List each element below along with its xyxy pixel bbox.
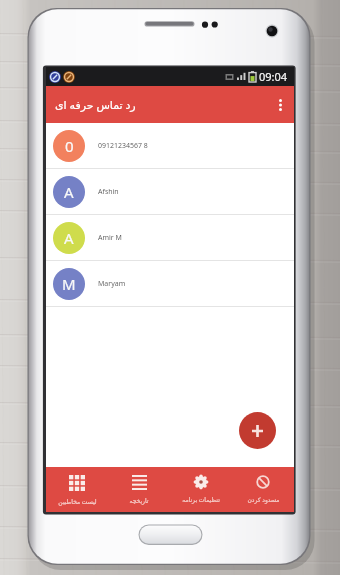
button[interactable]: A bbox=[46, 215, 294, 261]
button[interactable]: 0 bbox=[46, 123, 294, 169]
staticText: تنظیمات برنامه bbox=[182, 496, 220, 504]
staticText: 09:04 bbox=[259, 69, 288, 84]
staticText: لیست مخاطبین bbox=[58, 498, 97, 506]
button[interactable]: A bbox=[46, 169, 294, 215]
button[interactable]: M bbox=[46, 261, 294, 307]
staticText: M bbox=[62, 274, 76, 294]
button[interactable]: لیست مخاطبین bbox=[46, 467, 108, 512]
staticText: A bbox=[64, 228, 74, 248]
button[interactable]: More options bbox=[266, 86, 294, 123]
staticText: Afshin bbox=[98, 187, 119, 197]
staticText: رد تماس حرفه ای bbox=[55, 97, 136, 112]
staticText: تاریخچه bbox=[129, 497, 149, 504]
button[interactable]: مسدود کردن bbox=[232, 467, 294, 512]
button[interactable]: Add contact bbox=[239, 412, 276, 449]
staticText: Amir M bbox=[98, 233, 122, 243]
staticText: مسدود کردن bbox=[247, 496, 280, 504]
staticText: A bbox=[64, 182, 74, 202]
button[interactable]: تنظیمات برنامه bbox=[170, 467, 232, 512]
button[interactable]: تاریخچه bbox=[108, 467, 170, 512]
staticText: 09121234567 8 bbox=[98, 141, 148, 151]
staticText: Maryam bbox=[98, 279, 126, 289]
staticText: 0 bbox=[65, 136, 74, 156]
